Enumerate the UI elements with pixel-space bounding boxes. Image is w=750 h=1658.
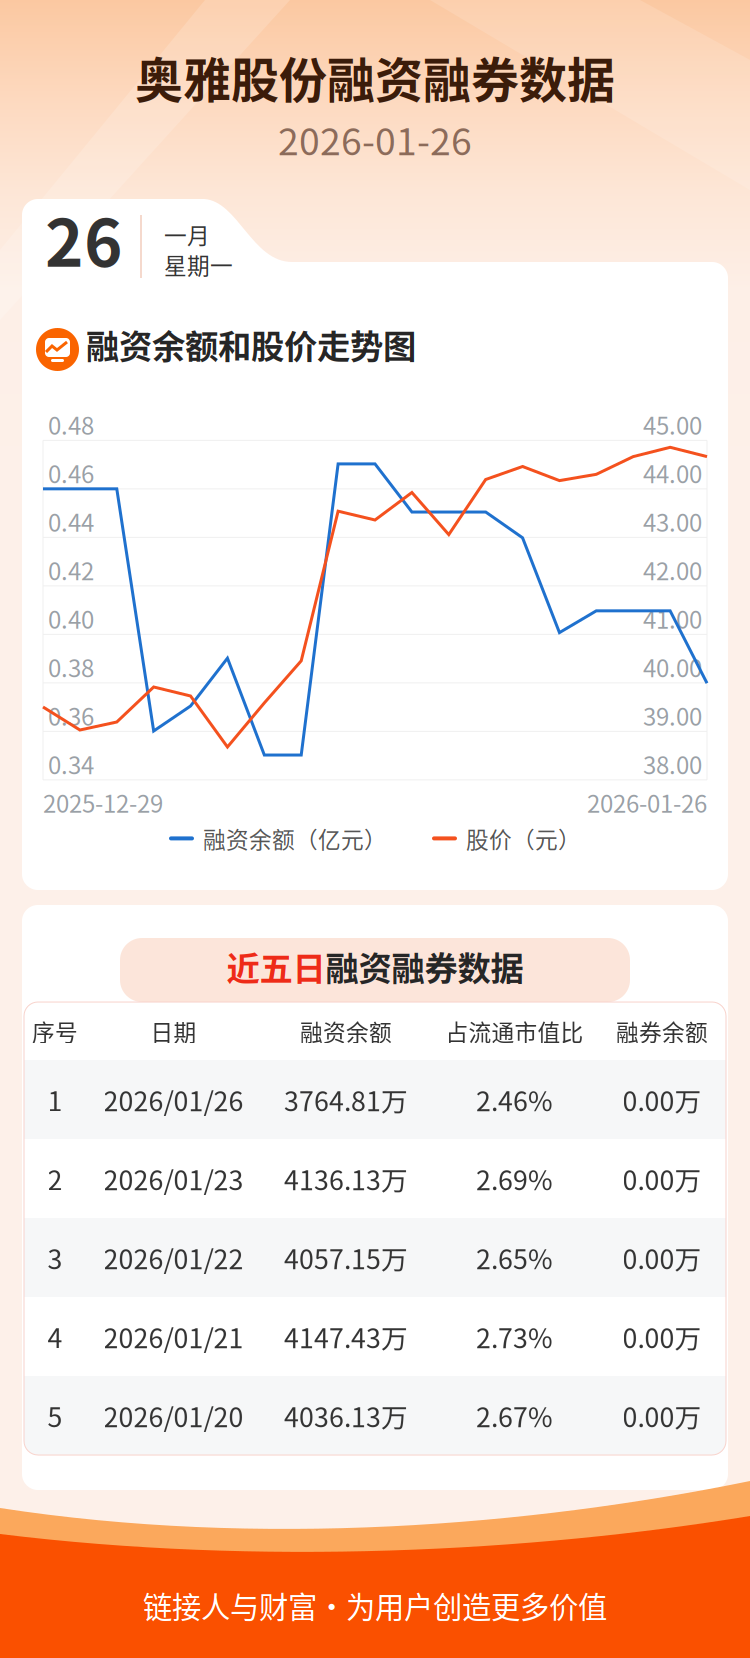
staticText: 2.65% <box>476 1238 553 1277</box>
staticText: 2026/01/21 <box>103 1317 243 1356</box>
staticText: 3764.81万 <box>284 1080 408 1119</box>
staticText: 44.00 <box>643 455 702 490</box>
staticText: 0.38 <box>48 649 94 684</box>
staticText: 奥雅股份融资融券数据 <box>135 42 615 111</box>
staticText: 2026/01/20 <box>103 1396 243 1435</box>
staticText: 43.00 <box>643 504 702 539</box>
staticText: 4136.13万 <box>284 1159 408 1198</box>
staticText: 2025-12-29 <box>43 785 163 820</box>
staticText: 0.44 <box>48 504 94 539</box>
staticText: 4057.15万 <box>284 1238 408 1277</box>
staticText: 2026/01/26 <box>103 1080 243 1119</box>
staticText: 2026/01/23 <box>103 1159 243 1198</box>
staticText: 链接人与财富·为用户创造更多价值 <box>143 1584 607 1626</box>
staticText: 一月 <box>164 218 210 251</box>
staticText: 40.00 <box>643 649 702 684</box>
staticText: 3 <box>47 1238 62 1277</box>
staticText: 0.00万 <box>622 1080 701 1119</box>
staticText: 2026/01/22 <box>103 1238 243 1277</box>
staticText: 0.36 <box>48 698 94 733</box>
staticText: 序号 <box>32 1015 78 1047</box>
staticText: 2 <box>47 1159 62 1198</box>
staticText: 0.00万 <box>622 1238 701 1277</box>
staticText: 0.48 <box>48 407 94 442</box>
staticText: 2.67% <box>476 1396 553 1435</box>
staticText: 0.42 <box>48 552 94 587</box>
staticText: 2.73% <box>476 1317 553 1356</box>
staticText: 2026-01-26 <box>587 785 707 820</box>
staticText: 0.34 <box>48 746 94 781</box>
staticText: 融资余额 <box>300 1015 392 1047</box>
staticText: 38.00 <box>643 746 702 781</box>
staticText: 4147.43万 <box>284 1317 408 1356</box>
staticText: 0.46 <box>48 455 94 490</box>
staticText: 0.00万 <box>622 1396 701 1435</box>
staticText: 0.40 <box>48 601 94 636</box>
staticText: 占流通市值比 <box>445 1015 583 1047</box>
staticText: 融资融券数据 <box>325 942 523 990</box>
staticText: 日期 <box>150 1015 196 1047</box>
staticText: 26 <box>45 191 123 286</box>
staticText: 45.00 <box>643 407 702 442</box>
staticText: 股价（元） <box>466 822 581 855</box>
staticText: 0.00万 <box>622 1159 701 1198</box>
staticText: 2.46% <box>476 1080 553 1119</box>
staticText: 1 <box>47 1080 62 1119</box>
staticText: 42.00 <box>643 552 702 587</box>
staticText: 5 <box>47 1396 62 1435</box>
staticText: 4036.13万 <box>284 1396 408 1435</box>
staticText: 近五日 <box>226 942 325 990</box>
staticText: 39.00 <box>643 698 702 733</box>
staticText: 融券余额 <box>616 1015 708 1047</box>
staticText: 0.00万 <box>622 1317 701 1356</box>
staticText: 星期一 <box>164 248 233 281</box>
staticText: 41.00 <box>643 601 702 636</box>
staticText: 融资余额和股价走势图 <box>86 320 416 368</box>
staticText: 融资余额（亿元） <box>203 822 387 855</box>
staticText: 4 <box>47 1317 62 1356</box>
staticText: 2026-01-26 <box>278 112 472 166</box>
staticText: 2.69% <box>476 1159 553 1198</box>
